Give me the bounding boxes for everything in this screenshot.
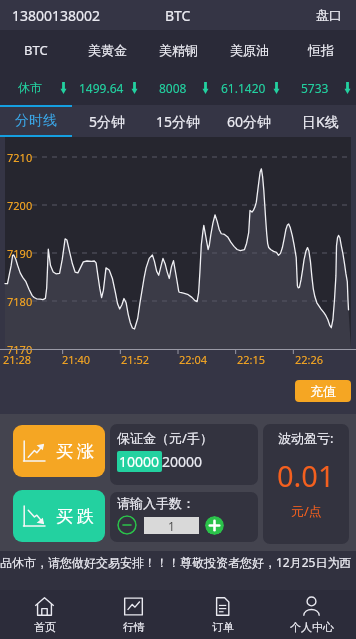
button[interactable]: 买涨 <box>13 425 105 477</box>
staticText: 1 <box>168 518 175 534</box>
staticText: 请输入手数： <box>117 495 195 511</box>
staticText: 20000 <box>162 452 203 471</box>
staticText: 13800138002 <box>12 6 101 25</box>
button[interactable]: 美原油 <box>214 30 285 70</box>
staticText: 10000 <box>119 452 160 471</box>
button[interactable]: 订单 <box>178 590 267 639</box>
staticText: 8008 <box>159 80 187 96</box>
staticText: 分时线 <box>15 112 57 130</box>
staticText: 买跌 <box>54 506 96 527</box>
staticText: 7180 <box>7 294 33 309</box>
button[interactable]: 恒指 <box>285 30 356 70</box>
button[interactable]: 充值 <box>295 380 351 402</box>
staticText: 品休市，请您做好交易安排！！！尊敬投资者您好，12月25日为西方 <box>0 554 356 570</box>
staticText: 订单 <box>212 620 234 634</box>
staticText: 22:26 <box>295 352 324 367</box>
staticText: 22:15 <box>237 352 266 367</box>
button[interactable]: 美精铜 <box>143 30 214 70</box>
staticText: 60分钟 <box>227 112 272 131</box>
staticText: 保证金（元/手） <box>117 429 213 447</box>
button[interactable]: 分时线 <box>0 105 72 137</box>
staticText: 美原油 <box>230 42 269 58</box>
staticText: 元/点 <box>291 502 322 520</box>
staticText: 休市 <box>18 80 42 95</box>
staticText: 行情 <box>123 620 145 634</box>
button[interactable]: BTC <box>0 30 72 70</box>
staticText: BTC <box>165 6 191 25</box>
staticText: 个人中心 <box>290 620 334 634</box>
staticText: 21:52 <box>121 352 150 367</box>
staticText: 波动盈亏: <box>278 429 334 447</box>
staticText: 7200 <box>7 198 33 213</box>
staticText: 5733 <box>301 80 329 96</box>
staticText: 7190 <box>7 246 33 261</box>
staticText: 22:04 <box>179 352 208 367</box>
staticText: 21:40 <box>62 352 91 367</box>
button[interactable]: 10000 <box>117 451 162 472</box>
staticText: 日K线 <box>302 112 339 131</box>
button[interactable]: 60分钟 <box>214 105 285 137</box>
staticText: 充值 <box>310 383 336 399</box>
button[interactable]: 首页 <box>0 590 89 639</box>
button[interactable]: 日K线 <box>285 105 356 137</box>
button[interactable]: 买跌 <box>13 490 105 542</box>
staticText: 0.01 <box>277 456 335 495</box>
button[interactable]: 5分钟 <box>72 105 143 137</box>
staticText: 21:28 <box>3 352 32 367</box>
staticText: 7170 <box>7 342 33 357</box>
staticText: 5分钟 <box>89 112 126 131</box>
staticText: 美精铜 <box>159 42 198 58</box>
staticText: 15分钟 <box>156 112 201 131</box>
staticText: 恒指 <box>308 42 334 58</box>
staticText: 61.1420 <box>221 80 266 96</box>
button[interactable]: 盘口 <box>302 0 356 30</box>
staticText: 7210 <box>7 150 33 165</box>
staticText: BTC <box>24 41 48 59</box>
button[interactable]: 行情 <box>89 590 178 639</box>
button[interactable]: Increase lots <box>205 516 224 535</box>
button[interactable]: Decrease lots <box>117 515 137 535</box>
button[interactable]: 品休市，请您做好交易安排！！！尊敬投资者您好，12月25日为西方 <box>0 551 356 590</box>
button[interactable]: 美黄金 <box>72 30 143 70</box>
button[interactable]: 个人中心 <box>267 590 356 639</box>
staticText: 盘口 <box>316 7 342 23</box>
staticText: 美黄金 <box>88 42 127 58</box>
staticText: 1499.64 <box>79 80 124 96</box>
staticText: 首页 <box>34 620 56 634</box>
button[interactable]: 15分钟 <box>143 105 214 137</box>
staticText: 买涨 <box>54 441 96 462</box>
